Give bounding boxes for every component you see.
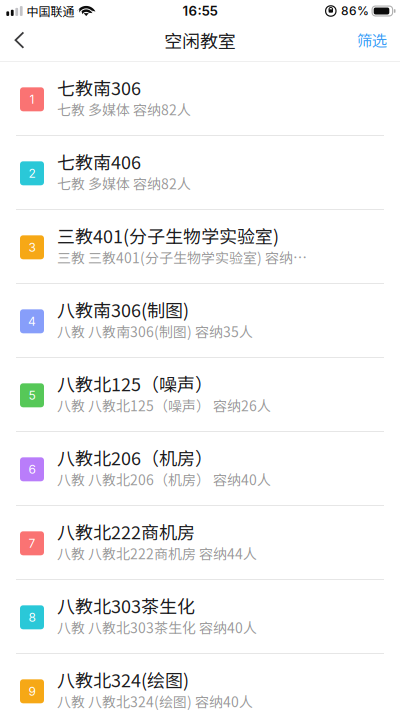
button[interactable]: 筛选 (341, 22, 400, 61)
button[interactable]: 4 (0, 284, 400, 358)
staticText: 八教 八教北303茶生化 容纳40人 (57, 617, 257, 637)
button[interactable]: 6 (0, 432, 400, 506)
staticText: 5 (28, 388, 35, 402)
staticText: 8 (28, 610, 35, 624)
button[interactable]: 7 (0, 506, 400, 580)
button[interactable]: 1 (0, 62, 400, 136)
staticText: 八教 八教北222商机房 容纳44人 (57, 543, 257, 563)
button[interactable]: 9 (0, 654, 400, 710)
staticText: 86% (341, 4, 369, 18)
button[interactable]: 3 (0, 210, 400, 284)
staticText: 中国联通 (26, 2, 74, 20)
staticText: 八教北125（噪声） (57, 370, 213, 396)
staticText: 八教北222商机房 (57, 518, 195, 544)
staticText: 1 (29, 92, 34, 106)
staticText: 八教 八教北206（机房） 容纳40人 (57, 469, 271, 489)
button[interactable]: 5 (0, 358, 400, 432)
button[interactable]: 2 (0, 136, 400, 210)
staticText: 八教北324(绘图) (57, 666, 189, 692)
staticText: 八教 八教南306(制图) 容纳35人 (57, 321, 253, 341)
staticText: 七教南306 (57, 74, 141, 100)
button[interactable]: 8 (0, 580, 400, 654)
staticText: 八教 八教北324(绘图) 容纳40人 (57, 691, 253, 710)
staticText: 七教 多媒体 容纳82人 (57, 99, 191, 119)
staticText: 八教北206（机房） (57, 444, 213, 470)
staticText: 七教南406 (57, 148, 141, 174)
staticText: 6 (28, 462, 35, 476)
staticText: 八教北303茶生化 (57, 592, 195, 618)
staticText: 七教 多媒体 容纳82人 (57, 173, 191, 193)
staticText: 八教南306(制图) (57, 296, 189, 322)
staticText: 7 (28, 536, 35, 550)
staticText: 4 (28, 314, 36, 328)
button[interactable]: Back (0, 22, 46, 61)
staticText: 三教 三教401(分子生物学实验室) 容纳… (57, 247, 307, 267)
staticText: 八教 八教北125（噪声） 容纳26人 (57, 395, 271, 415)
staticText: 16:55 (182, 3, 217, 19)
staticText: 3 (28, 240, 35, 254)
staticText: 筛选 (357, 29, 387, 51)
staticText: 2 (28, 166, 35, 180)
staticText: 三教401(分子生物学实验室) (57, 222, 279, 248)
staticText: 空闲教室 (164, 27, 236, 53)
staticText: 9 (28, 684, 35, 698)
